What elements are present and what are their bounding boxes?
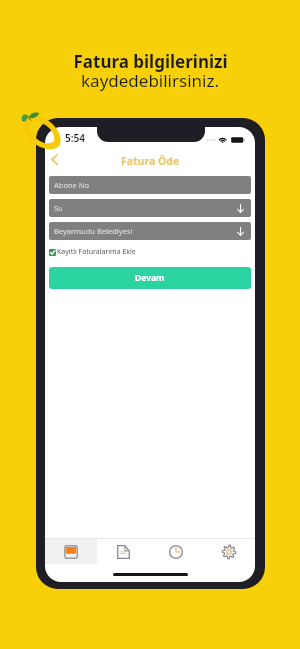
staticText: Abone No: [54, 180, 89, 190]
staticText: Kayıtlı Faturalarıma Ekle: [57, 247, 136, 257]
staticText: Devam: [135, 272, 165, 284]
button[interactable]: Abone No: [49, 176, 251, 194]
staticText: Fatura bilgilerinizi: [73, 50, 228, 73]
staticText: kaydedebilirsiniz.: [81, 69, 219, 92]
button[interactable]: Beyarmudu Belediyesi: [49, 222, 251, 240]
button[interactable]: Su: [49, 199, 251, 217]
button[interactable]: Kayıtlı Faturalarıma Ekle: [49, 247, 136, 257]
button[interactable]: Devam: [49, 267, 251, 289]
staticText: Su: [54, 203, 63, 213]
staticText: 5:54: [65, 131, 85, 145]
button[interactable]: Documents: [97, 539, 149, 564]
staticText: Fatura Öde: [121, 154, 180, 168]
button[interactable]: Bills: [45, 539, 97, 564]
staticText: Beyarmudu Belediyesi: [54, 226, 133, 236]
button[interactable]: History: [149, 539, 202, 564]
button[interactable]: Settings: [202, 539, 255, 564]
button[interactable]: Back: [45, 150, 64, 169]
